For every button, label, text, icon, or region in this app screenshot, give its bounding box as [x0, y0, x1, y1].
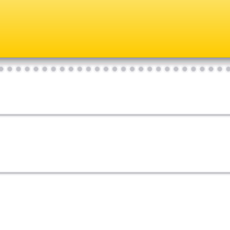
button[interactable]: Notepad header	[0, 0, 230, 57]
button[interactable]: Note line 2	[0, 118, 230, 176]
button[interactable]: Note line 1	[0, 75, 230, 118]
